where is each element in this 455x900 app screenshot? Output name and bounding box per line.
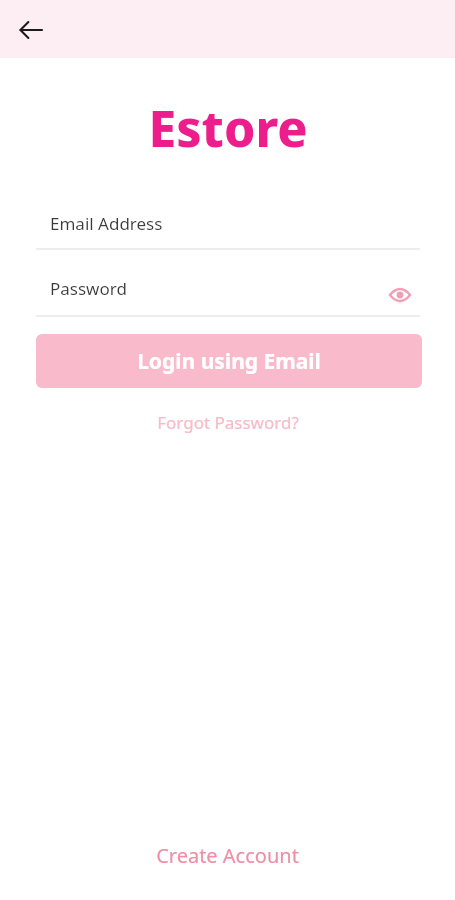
button[interactable]: Create Account: [146, 837, 309, 874]
button[interactable]: Back: [10, 9, 52, 51]
staticText: Create Account: [156, 842, 299, 869]
button[interactable]: Password: [36, 262, 420, 315]
staticText: Password: [50, 277, 127, 300]
button[interactable]: Login using Email: [36, 334, 422, 388]
button[interactable]: Email Address: [36, 198, 420, 249]
button[interactable]: Show password: [381, 276, 419, 314]
staticText: Login using Email: [137, 347, 321, 376]
button[interactable]: Forgot Password?: [149, 407, 307, 438]
staticText: Forgot Password?: [157, 411, 299, 434]
staticText: Estore: [148, 94, 308, 162]
staticText: Email Address: [50, 212, 163, 235]
